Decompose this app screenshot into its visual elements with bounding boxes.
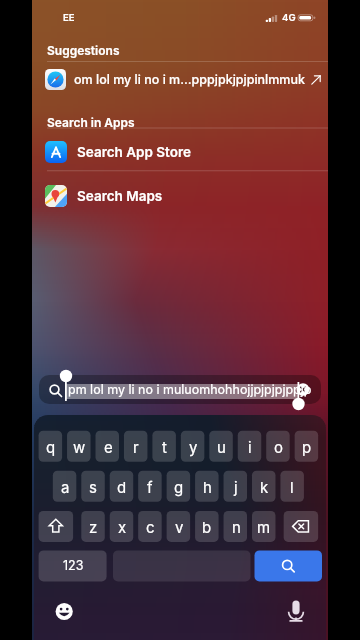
staticText: 4G [282,12,296,24]
staticText: k [260,478,269,496]
button[interactable]: u [209,431,233,462]
button[interactable]: b [195,511,219,542]
button[interactable]: r [124,431,148,462]
staticText: h [203,478,212,496]
button[interactable]: x [110,511,134,542]
button[interactable]: q [39,431,63,462]
button[interactable]: v [167,511,191,542]
staticText: a [61,478,70,496]
staticText: pm lol my li no i muluomhohhojjpjpjpjppj… [68,382,312,397]
button[interactable]: g [167,471,191,502]
staticText: r [133,438,139,456]
staticText: n [232,518,241,536]
button[interactable]: h [195,471,219,502]
button[interactable]: j [224,471,248,502]
button[interactable]: k [252,471,276,502]
button[interactable]: w [67,431,91,462]
button[interactable]: om lol my li no i m…pppjpkjpjpinlmmuk [32,65,328,94]
staticText: p [302,438,312,456]
button[interactable]: m [252,511,276,542]
button[interactable]: z [81,511,105,542]
staticText: EE [63,12,75,24]
button[interactable]: Search App Store [32,133,328,171]
staticText: s [89,478,97,496]
button[interactable]: y [181,431,205,462]
staticText: y [189,438,198,456]
staticText: m [257,518,271,536]
staticText: 123 [63,558,84,573]
staticText: g [174,478,184,496]
button[interactable]: e [96,431,120,462]
staticText: x [118,518,127,536]
button[interactable]: d [110,471,134,502]
staticText: i [248,438,252,456]
staticText: o [274,438,283,456]
staticText: f [147,478,153,496]
button[interactable]: a [53,471,77,502]
staticText: j [234,478,238,496]
button[interactable]: p [295,431,319,462]
button[interactable]: 123 [39,550,107,581]
staticText: v [175,518,184,536]
button[interactable]: n [224,511,248,542]
staticText: c [146,518,155,536]
button[interactable]: o [266,431,290,462]
staticText: Search Maps [77,188,163,204]
staticText: q [46,438,56,456]
button[interactable]: l [280,471,304,502]
staticText: om lol my li no i m…pppjpkjpjpinlmmuk [74,72,305,87]
staticText: z [89,518,98,536]
button[interactable]: i [238,431,262,462]
staticText: d [117,478,127,496]
staticText: l [290,478,294,496]
button[interactable]: f [138,471,162,502]
staticText: w [73,438,86,456]
button[interactable]: c [138,511,162,542]
staticText: Suggestions [47,43,120,58]
staticText: Search App Store [77,144,191,160]
staticText: u [217,438,226,456]
button[interactable]: s [81,471,105,502]
staticText: t [162,438,167,456]
button[interactable]: t [152,431,176,462]
button[interactable]: Search Maps [32,177,328,215]
staticText: e [104,438,113,456]
staticText: b [202,518,212,536]
staticText: Search in Apps [47,115,135,130]
